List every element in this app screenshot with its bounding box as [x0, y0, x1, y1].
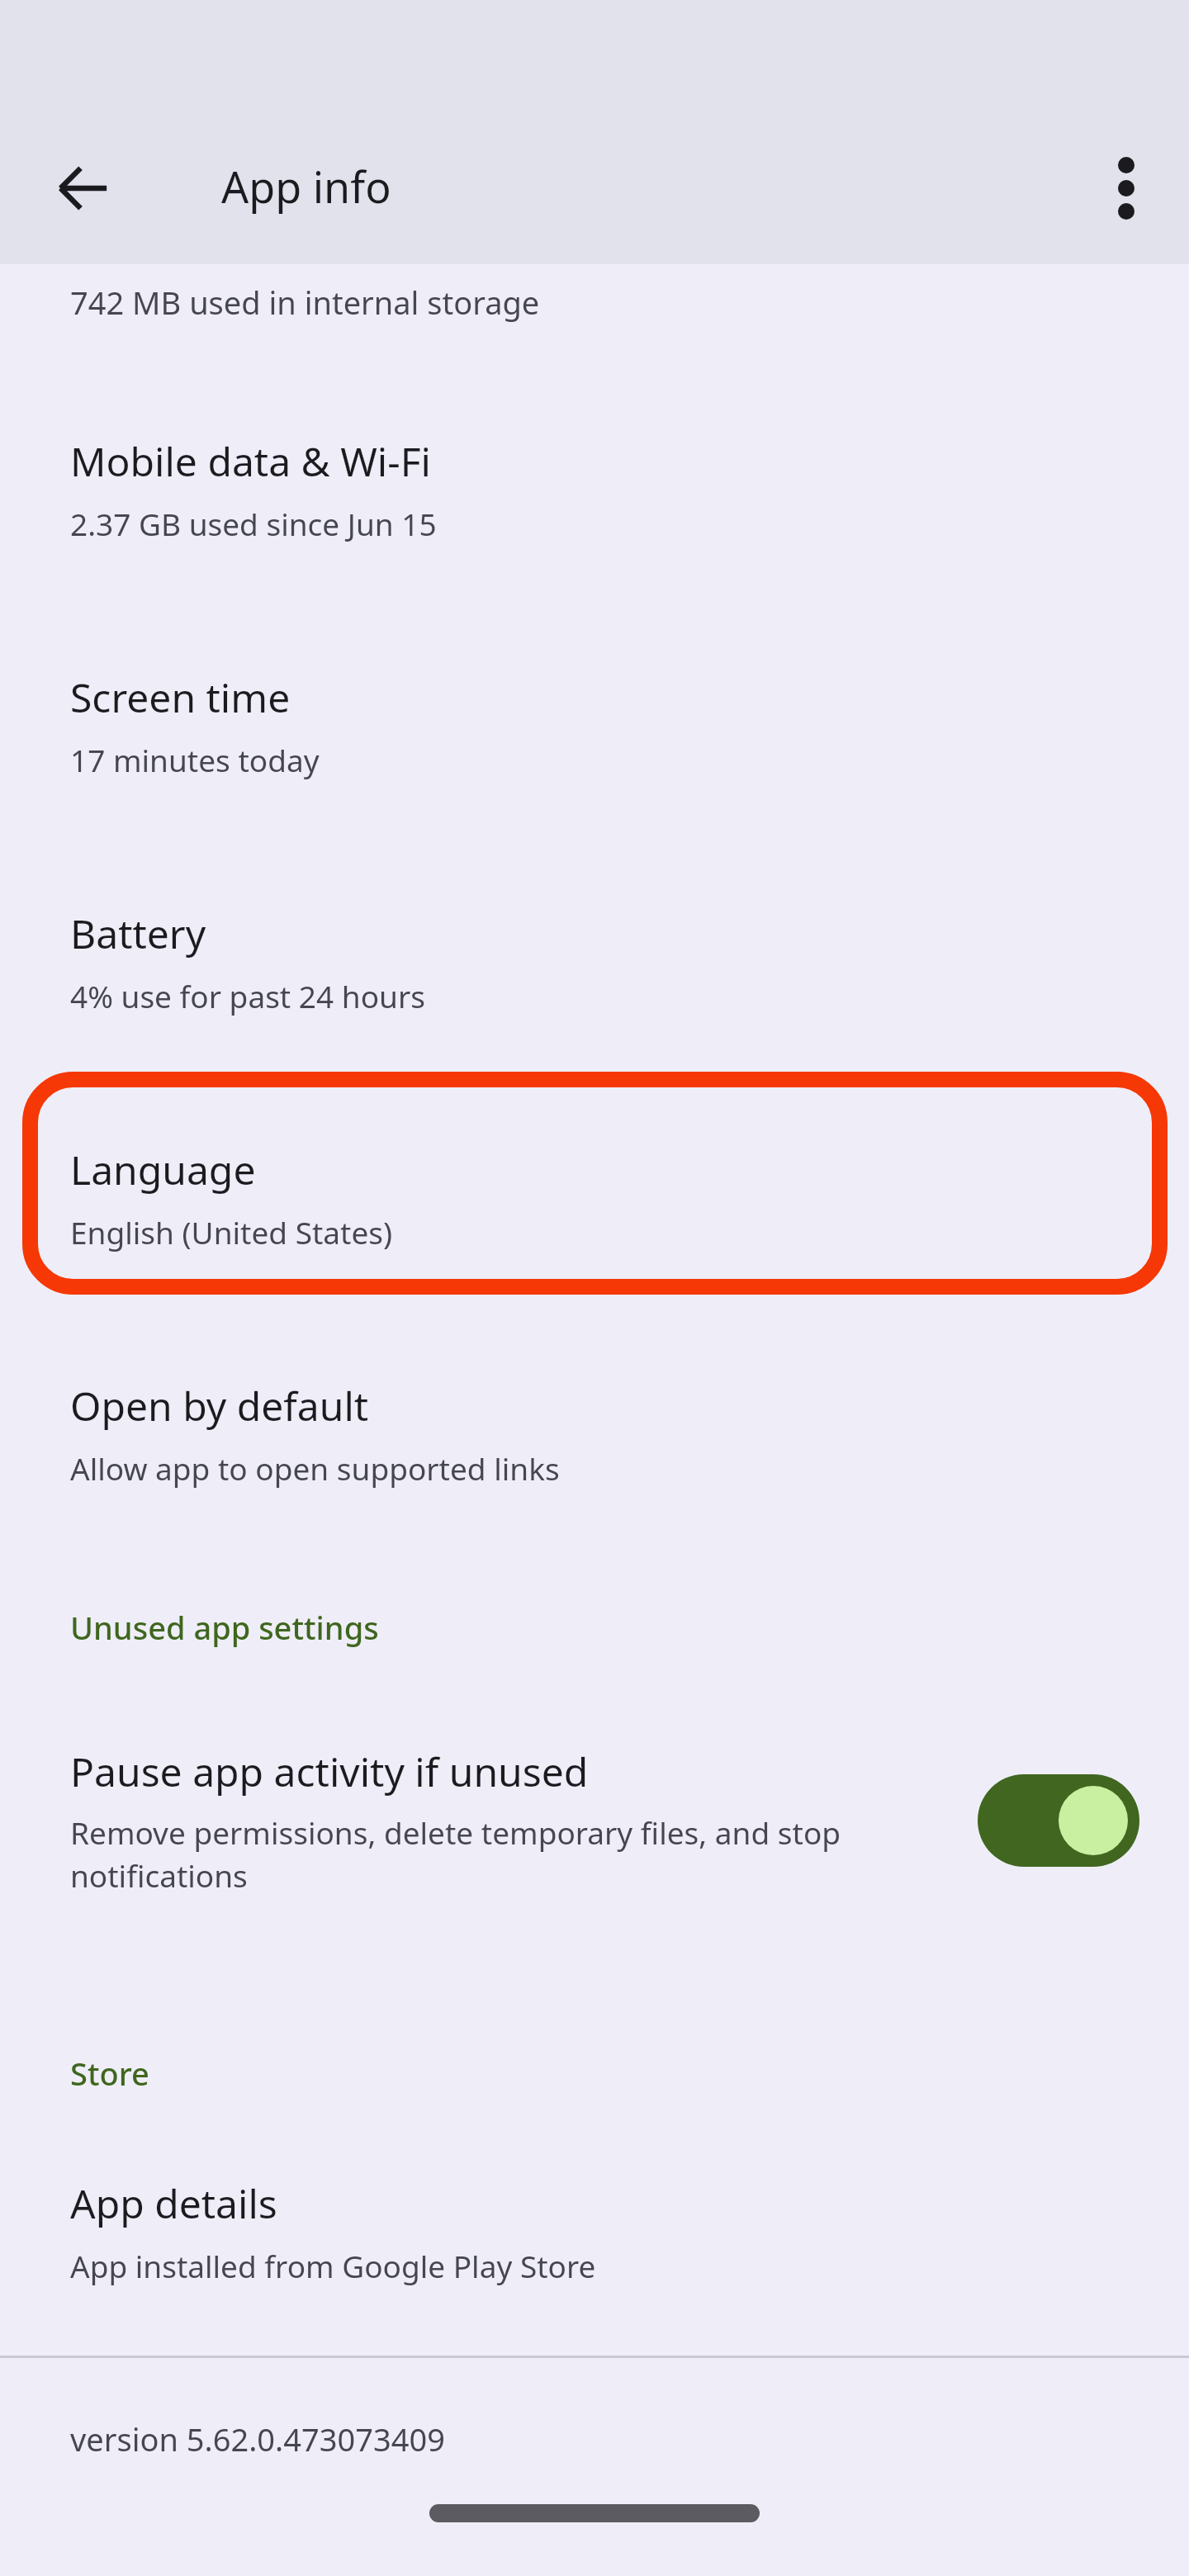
button[interactable]: Mobile data & Wi-Fi [0, 413, 1189, 603]
button[interactable]: Battery [0, 885, 1189, 1075]
staticText: 2.37 GB used since Jun 15 [70, 503, 437, 544]
button[interactable]: 742 MB used in internal storage [0, 264, 1189, 355]
button[interactable]: Navigate up [31, 137, 134, 239]
staticText: Store [70, 2052, 149, 2095]
button[interactable]: Screen time [0, 649, 1189, 839]
staticText: App info [221, 157, 391, 215]
staticText: English (United States) [70, 1211, 393, 1252]
staticText: 4% use for past 24 hours [70, 975, 425, 1016]
staticText: Open by default [70, 1379, 369, 1432]
staticText: Mobile data & Wi-Fi [70, 434, 431, 488]
staticText: Remove permissions, delete temporary fil… [70, 1811, 953, 1896]
staticText: Battery [70, 907, 206, 960]
button[interactable]: Pause app activity if unused [978, 1774, 1139, 1867]
button[interactable]: Language [0, 1121, 1189, 1311]
button[interactable]: App details [0, 2155, 1189, 2345]
button[interactable]: Open by default [0, 1357, 1189, 1547]
button[interactable]: Pause app activity if unused [0, 1701, 1189, 1940]
button[interactable]: More options [1075, 137, 1177, 239]
staticText: 17 minutes today [70, 739, 320, 780]
staticText: Pause app activity if unused [70, 1745, 589, 1798]
staticText: Screen time [70, 670, 291, 724]
staticText: Unused app settings [70, 1606, 379, 1649]
staticText: App installed from Google Play Store [70, 2245, 596, 2286]
staticText: version 5.62.0.473073409 [70, 2417, 445, 2460]
staticText: App details [70, 2176, 277, 2230]
staticText: Language [70, 1143, 256, 1196]
staticText: Allow app to open supported links [70, 1447, 560, 1489]
staticText: 742 MB used in internal storage [70, 281, 540, 324]
